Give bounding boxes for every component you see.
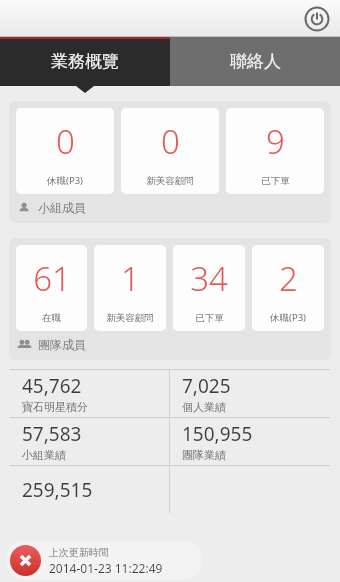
staticText: 61 <box>33 256 71 301</box>
button[interactable]: 0 <box>16 108 114 194</box>
staticText: 57,583 <box>22 421 82 447</box>
button[interactable]: 45,762 <box>10 370 169 417</box>
staticText: 寶石明星積分 <box>22 400 88 414</box>
staticText: 2 <box>279 256 298 301</box>
staticText: 0 <box>56 119 75 164</box>
staticText: 休職(P3) <box>270 311 306 324</box>
staticText: 已下單 <box>261 175 290 187</box>
staticText: 新美容顧問 <box>146 175 194 187</box>
staticText: 45,762 <box>22 373 82 399</box>
staticText: 7,025 <box>182 373 231 399</box>
staticText: 小組成員 <box>38 200 86 215</box>
staticText: 0 <box>161 119 180 164</box>
button[interactable]: 7,025 <box>170 370 330 417</box>
staticText: 已下單 <box>195 312 224 324</box>
button[interactable]: 0 <box>121 108 219 194</box>
button[interactable]: 9 <box>226 108 324 194</box>
button[interactable]: 業務概覽 <box>0 37 170 86</box>
staticText: 業務概覽 <box>51 51 119 72</box>
button[interactable]: 57,583 <box>10 418 169 465</box>
staticText: 聯絡人 <box>230 51 281 72</box>
staticText: 上次更新時間 <box>49 546 109 559</box>
staticText: 團隊成員 <box>38 337 86 352</box>
button[interactable]: Dismiss <box>10 545 41 576</box>
staticText: 1 <box>121 256 140 301</box>
staticText: 150,955 <box>182 421 253 447</box>
staticText: 個人業績 <box>182 400 226 414</box>
staticText: 休職(P3) <box>47 174 83 187</box>
staticText: 小組業績 <box>22 448 66 462</box>
staticText: 9 <box>266 119 285 164</box>
staticText: 34 <box>190 256 228 301</box>
button[interactable]: Power <box>302 4 332 34</box>
staticText: 2014-01-23 11:22:49 <box>49 560 163 576</box>
button[interactable]: 2 <box>252 245 324 331</box>
button[interactable]: 1 <box>94 245 166 331</box>
button[interactable]: 聯絡人 <box>170 37 340 86</box>
button[interactable]: 61 <box>16 245 87 331</box>
button[interactable]: 150,955 <box>170 418 330 465</box>
staticText: 團隊業績 <box>182 448 226 462</box>
staticText: 在職 <box>42 312 61 324</box>
button[interactable]: 34 <box>173 245 245 331</box>
button[interactable]: 259,515 <box>10 466 169 513</box>
staticText: 259,515 <box>22 477 93 503</box>
button[interactable]: Dismiss <box>6 541 202 580</box>
staticText: 新美容顧問 <box>106 312 154 324</box>
